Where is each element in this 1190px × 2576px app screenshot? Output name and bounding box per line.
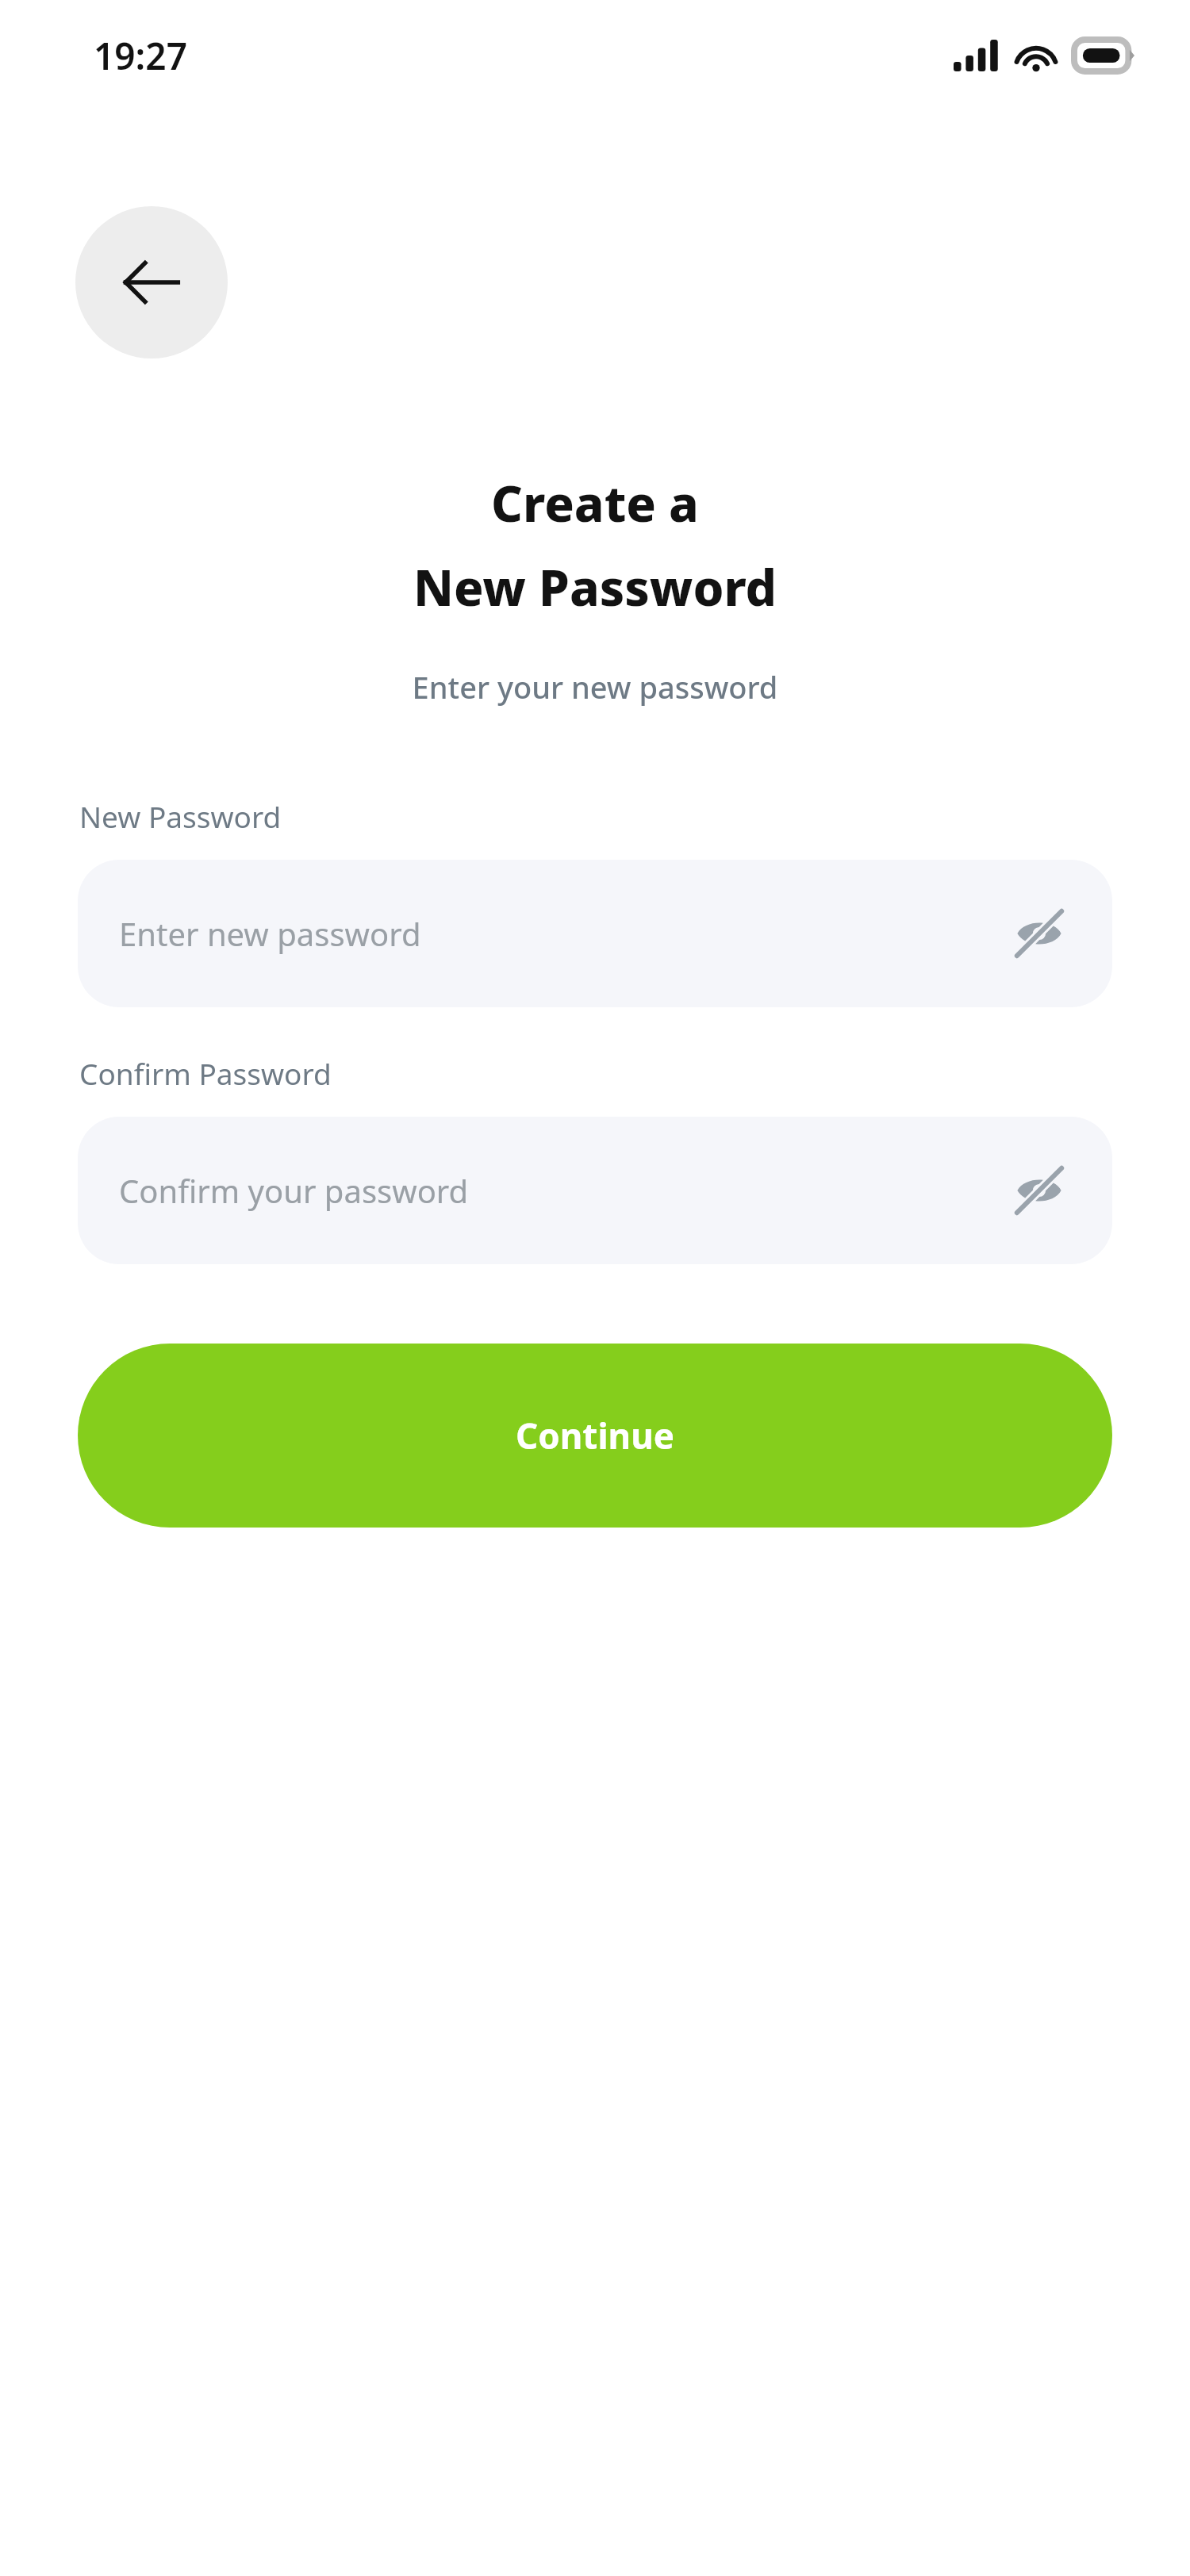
staticText: Enter your new password <box>0 666 1190 707</box>
staticText: 19:27 <box>94 31 187 81</box>
staticText: Create a <box>0 470 1190 536</box>
button[interactable]: Continue <box>78 1344 1112 1528</box>
button[interactable]: Show password <box>1011 1162 1068 1219</box>
button[interactable]: Show password <box>1011 905 1068 962</box>
staticText: New Password <box>0 554 1190 620</box>
staticText: Enter new password <box>119 912 1011 955</box>
staticText: Confirm Password <box>79 1053 332 1093</box>
button[interactable]: Enter new password <box>78 860 1112 1007</box>
staticText: New Password <box>79 796 282 836</box>
button[interactable]: Back <box>75 206 228 358</box>
staticText: Continue <box>516 1412 675 1459</box>
button[interactable]: Confirm your password <box>78 1117 1112 1264</box>
staticText: Confirm your password <box>119 1169 1011 1212</box>
